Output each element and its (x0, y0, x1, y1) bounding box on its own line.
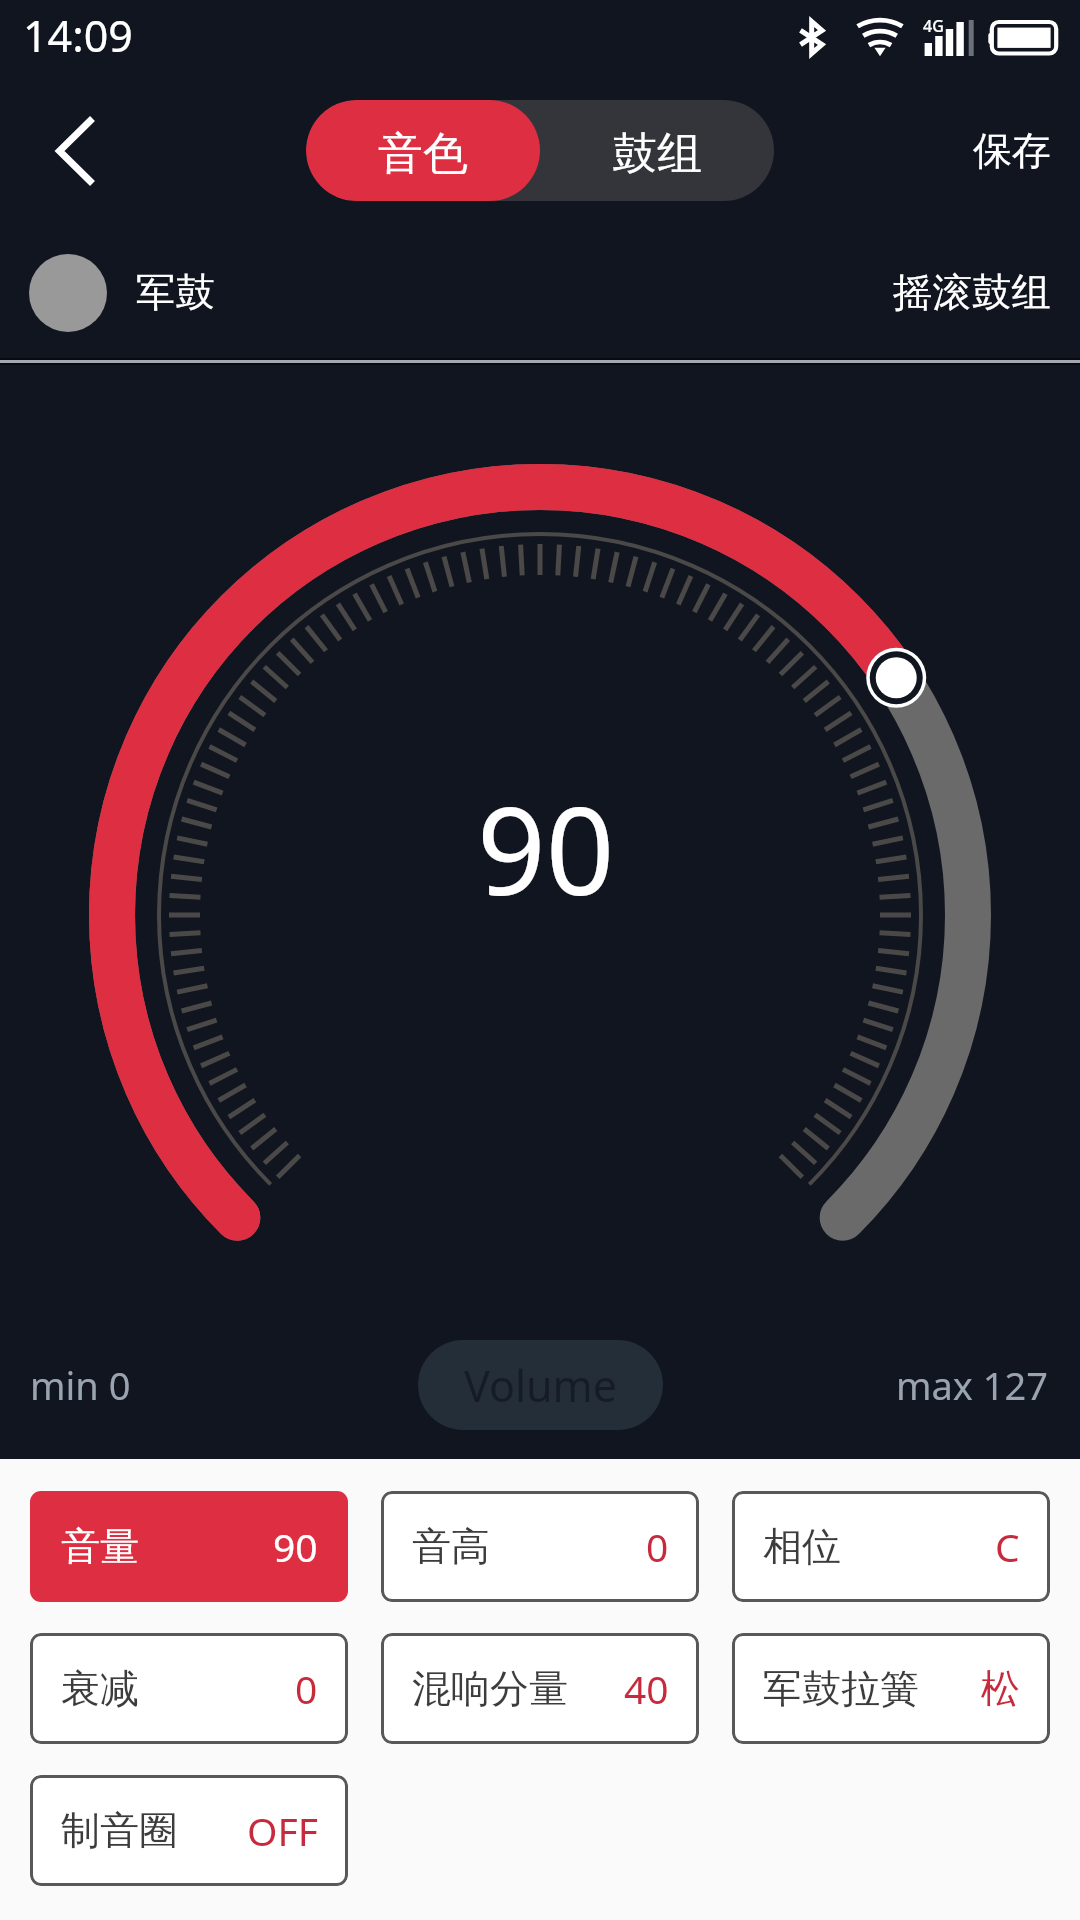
staticText: 制音圈 (61, 1806, 178, 1855)
staticText: 鼓组 (612, 126, 702, 183)
staticText: max 127 (896, 1359, 1049, 1411)
staticText: 音高 (412, 1522, 490, 1571)
staticText: 90 (273, 1520, 318, 1573)
button[interactable]: 军鼓拉簧 (732, 1633, 1050, 1744)
staticText: 衰减 (61, 1664, 139, 1713)
staticText: 保存 (973, 126, 1051, 175)
staticText: 4G (923, 15, 944, 37)
staticText: 军鼓拉簧 (763, 1664, 919, 1713)
button[interactable]: 相位 (732, 1491, 1050, 1602)
staticText: 90 (477, 767, 615, 930)
staticText: 音量 (61, 1522, 139, 1571)
button[interactable]: 音高 (381, 1491, 699, 1602)
button[interactable]: 保存 (973, 100, 1051, 201)
button[interactable]: 音量 (30, 1491, 348, 1602)
button[interactable]: Volume (418, 1340, 663, 1430)
staticText: 40 (624, 1662, 669, 1715)
button[interactable]: 鼓组 (540, 100, 774, 201)
staticText: 0 (646, 1520, 669, 1573)
button[interactable]: 混响分量 (381, 1633, 699, 1744)
staticText: 摇滚鼓组 (893, 268, 1051, 318)
staticText: min 0 (30, 1359, 131, 1411)
button[interactable]: 制音圈 (30, 1775, 348, 1886)
staticText: 音色 (378, 126, 468, 183)
staticText: 松 (981, 1664, 1020, 1713)
staticText: 混响分量 (412, 1664, 568, 1713)
button[interactable]: 衰减 (30, 1633, 348, 1744)
staticText: 14:09 (23, 6, 133, 65)
staticText: 0 (295, 1662, 318, 1715)
button[interactable]: 军鼓 (0, 240, 1080, 345)
button[interactable]: Back (16, 96, 126, 206)
staticText: Volume (464, 1356, 618, 1415)
staticText: 军鼓 (136, 268, 215, 318)
staticText: C (995, 1520, 1020, 1573)
button[interactable]: 音色 (306, 100, 540, 201)
button[interactable]: Volume dial, 90 (63, 438, 1017, 1392)
staticText: 相位 (763, 1522, 841, 1571)
staticText: OFF (247, 1804, 318, 1857)
